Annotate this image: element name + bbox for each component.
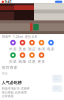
button[interactable]: 更多 bbox=[37, 53, 46, 64]
staticText: 酒店 bbox=[28, 47, 36, 51]
staticText: 附近 bbox=[2, 71, 8, 75]
staticText: 外卖 bbox=[9, 47, 17, 51]
staticText: 营业中 bbox=[2, 34, 11, 39]
button[interactable]: 休闲 bbox=[37, 40, 46, 51]
staticText: 人气必吃榜 bbox=[2, 80, 22, 85]
button[interactable]: 电影 bbox=[46, 40, 56, 51]
staticText: 美食 bbox=[18, 47, 26, 51]
staticText: 评分 4.8 bbox=[25, 34, 37, 39]
staticText: 每日更新 品质保障 bbox=[2, 90, 27, 94]
staticText: 推荐商家 bbox=[2, 65, 18, 70]
button[interactable]: 跑腿 bbox=[18, 53, 27, 64]
staticText: 跑腿 bbox=[18, 59, 26, 64]
button[interactable]: 买菜 bbox=[8, 53, 18, 64]
button[interactable]: 优惠 bbox=[27, 53, 37, 64]
staticText: 电影 bbox=[47, 47, 55, 51]
staticText: 优惠 bbox=[28, 59, 36, 64]
button[interactable] bbox=[52, 75, 62, 83]
staticText: 1.2km bbox=[13, 34, 23, 39]
button[interactable] bbox=[52, 85, 62, 92]
button[interactable]: 酒店 bbox=[27, 40, 37, 51]
staticText: 更多 bbox=[37, 59, 45, 64]
staticText: 立即查看 bbox=[2, 94, 14, 98]
staticText: 精选本地好店 优惠券 bbox=[2, 87, 30, 90]
button[interactable]: 外卖 bbox=[8, 40, 18, 51]
staticText: 9:41 bbox=[5, 0, 12, 4]
button[interactable]: 美食 bbox=[18, 40, 27, 51]
staticText: 休闲 bbox=[37, 47, 45, 51]
staticText: 买菜 bbox=[9, 59, 17, 64]
